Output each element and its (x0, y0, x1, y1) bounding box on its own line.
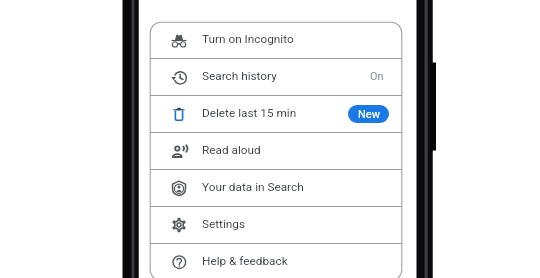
button[interactable]: Your data in Search (150, 170, 402, 206)
staticText: Search history (202, 69, 277, 83)
staticText: Turn on Incognito (202, 32, 294, 46)
staticText: Settings (202, 217, 246, 231)
staticText: Delete last 15 min (202, 106, 297, 120)
staticText: Read aloud (202, 143, 261, 157)
button[interactable]: Delete last 15 min (150, 96, 402, 132)
staticText: On (370, 70, 384, 83)
button[interactable]: Settings (150, 207, 402, 243)
button[interactable]: Turn on Incognito (150, 22, 402, 58)
button[interactable]: Search history (150, 59, 402, 95)
button[interactable]: Read aloud (150, 133, 402, 169)
staticText: Your data in Search (202, 180, 304, 194)
staticText: New (358, 108, 380, 121)
staticText: Help & feedback (202, 254, 288, 268)
button[interactable]: Help & feedback (150, 244, 402, 278)
